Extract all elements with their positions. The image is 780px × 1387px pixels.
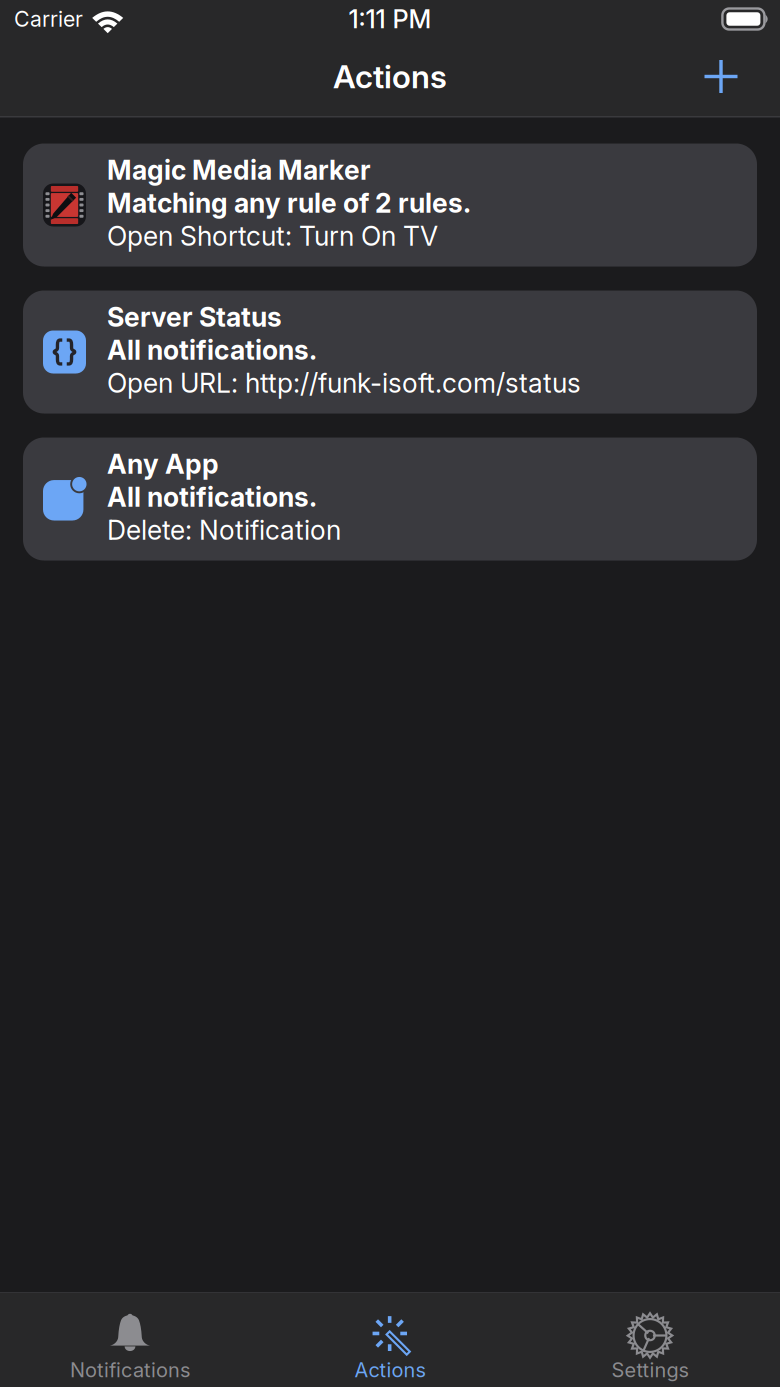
staticText: All notifications. (107, 334, 317, 366)
staticText: Open Shortcut: Turn On TV (107, 220, 438, 252)
button[interactable]: Notifications (0, 1293, 260, 1387)
staticText: Settings (611, 1358, 688, 1382)
staticText: Server Status (107, 301, 282, 333)
staticText: Open URL: http://funk-isoft.com/status (107, 367, 581, 399)
button[interactable]: Add action (692, 47, 750, 105)
button[interactable]: Server Status (23, 290, 757, 413)
button[interactable]: Settings (520, 1293, 780, 1387)
button[interactable]: Any App (23, 437, 757, 560)
staticText: Actions (333, 57, 447, 96)
staticText: Any App (107, 448, 219, 480)
staticText: Carrier (14, 6, 83, 32)
staticText: Matching any rule of 2 rules. (107, 187, 471, 219)
staticText: Notifications (70, 1358, 190, 1382)
staticText: 1:11 PM (348, 4, 431, 34)
staticText: All notifications. (107, 481, 317, 513)
button[interactable]: Magic Media Marker (23, 143, 757, 266)
staticText: Magic Media Marker (107, 154, 371, 186)
staticText: Delete: Notification (107, 514, 341, 546)
button[interactable]: Actions (260, 1293, 520, 1387)
staticText: Actions (354, 1358, 425, 1382)
